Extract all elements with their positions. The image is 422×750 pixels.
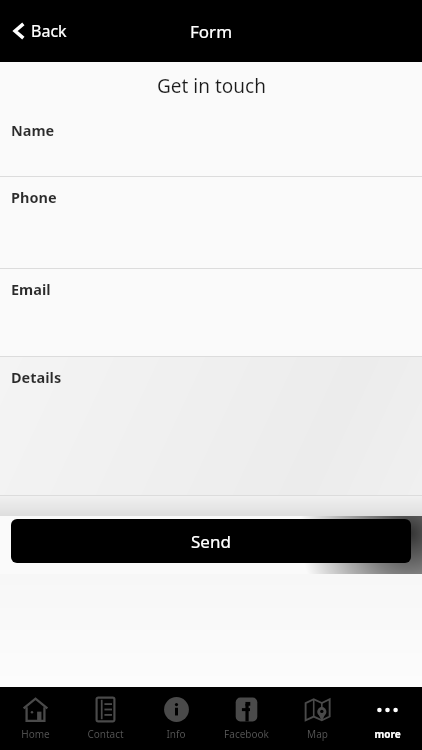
staticText: Form [190,20,233,43]
button[interactable]: Back [10,14,71,48]
button[interactable]: Home [0,687,70,750]
staticText: Name [11,120,55,140]
staticText: Phone [11,187,57,207]
button[interactable]: Details [0,357,422,496]
button[interactable]: more [352,687,422,750]
staticText: Contact [87,727,124,741]
button[interactable]: Contact [70,687,140,750]
staticText: Details [11,367,62,387]
button[interactable]: Name [0,110,422,177]
staticText: Home [21,727,50,741]
staticText: Send [191,530,231,553]
staticText: more [374,727,401,741]
staticText: Back [31,20,67,42]
button[interactable]: Facebook [211,687,281,750]
staticText: Facebook [224,727,269,741]
button[interactable]: Send [11,519,411,563]
staticText: Email [11,279,51,299]
button[interactable]: Info [141,687,211,750]
button[interactable]: Phone [0,177,422,269]
button[interactable]: Map [282,687,352,750]
button[interactable]: Email [0,269,422,357]
staticText: Info [166,727,186,741]
staticText: Get in touch [157,73,266,99]
staticText: Map [307,727,328,741]
